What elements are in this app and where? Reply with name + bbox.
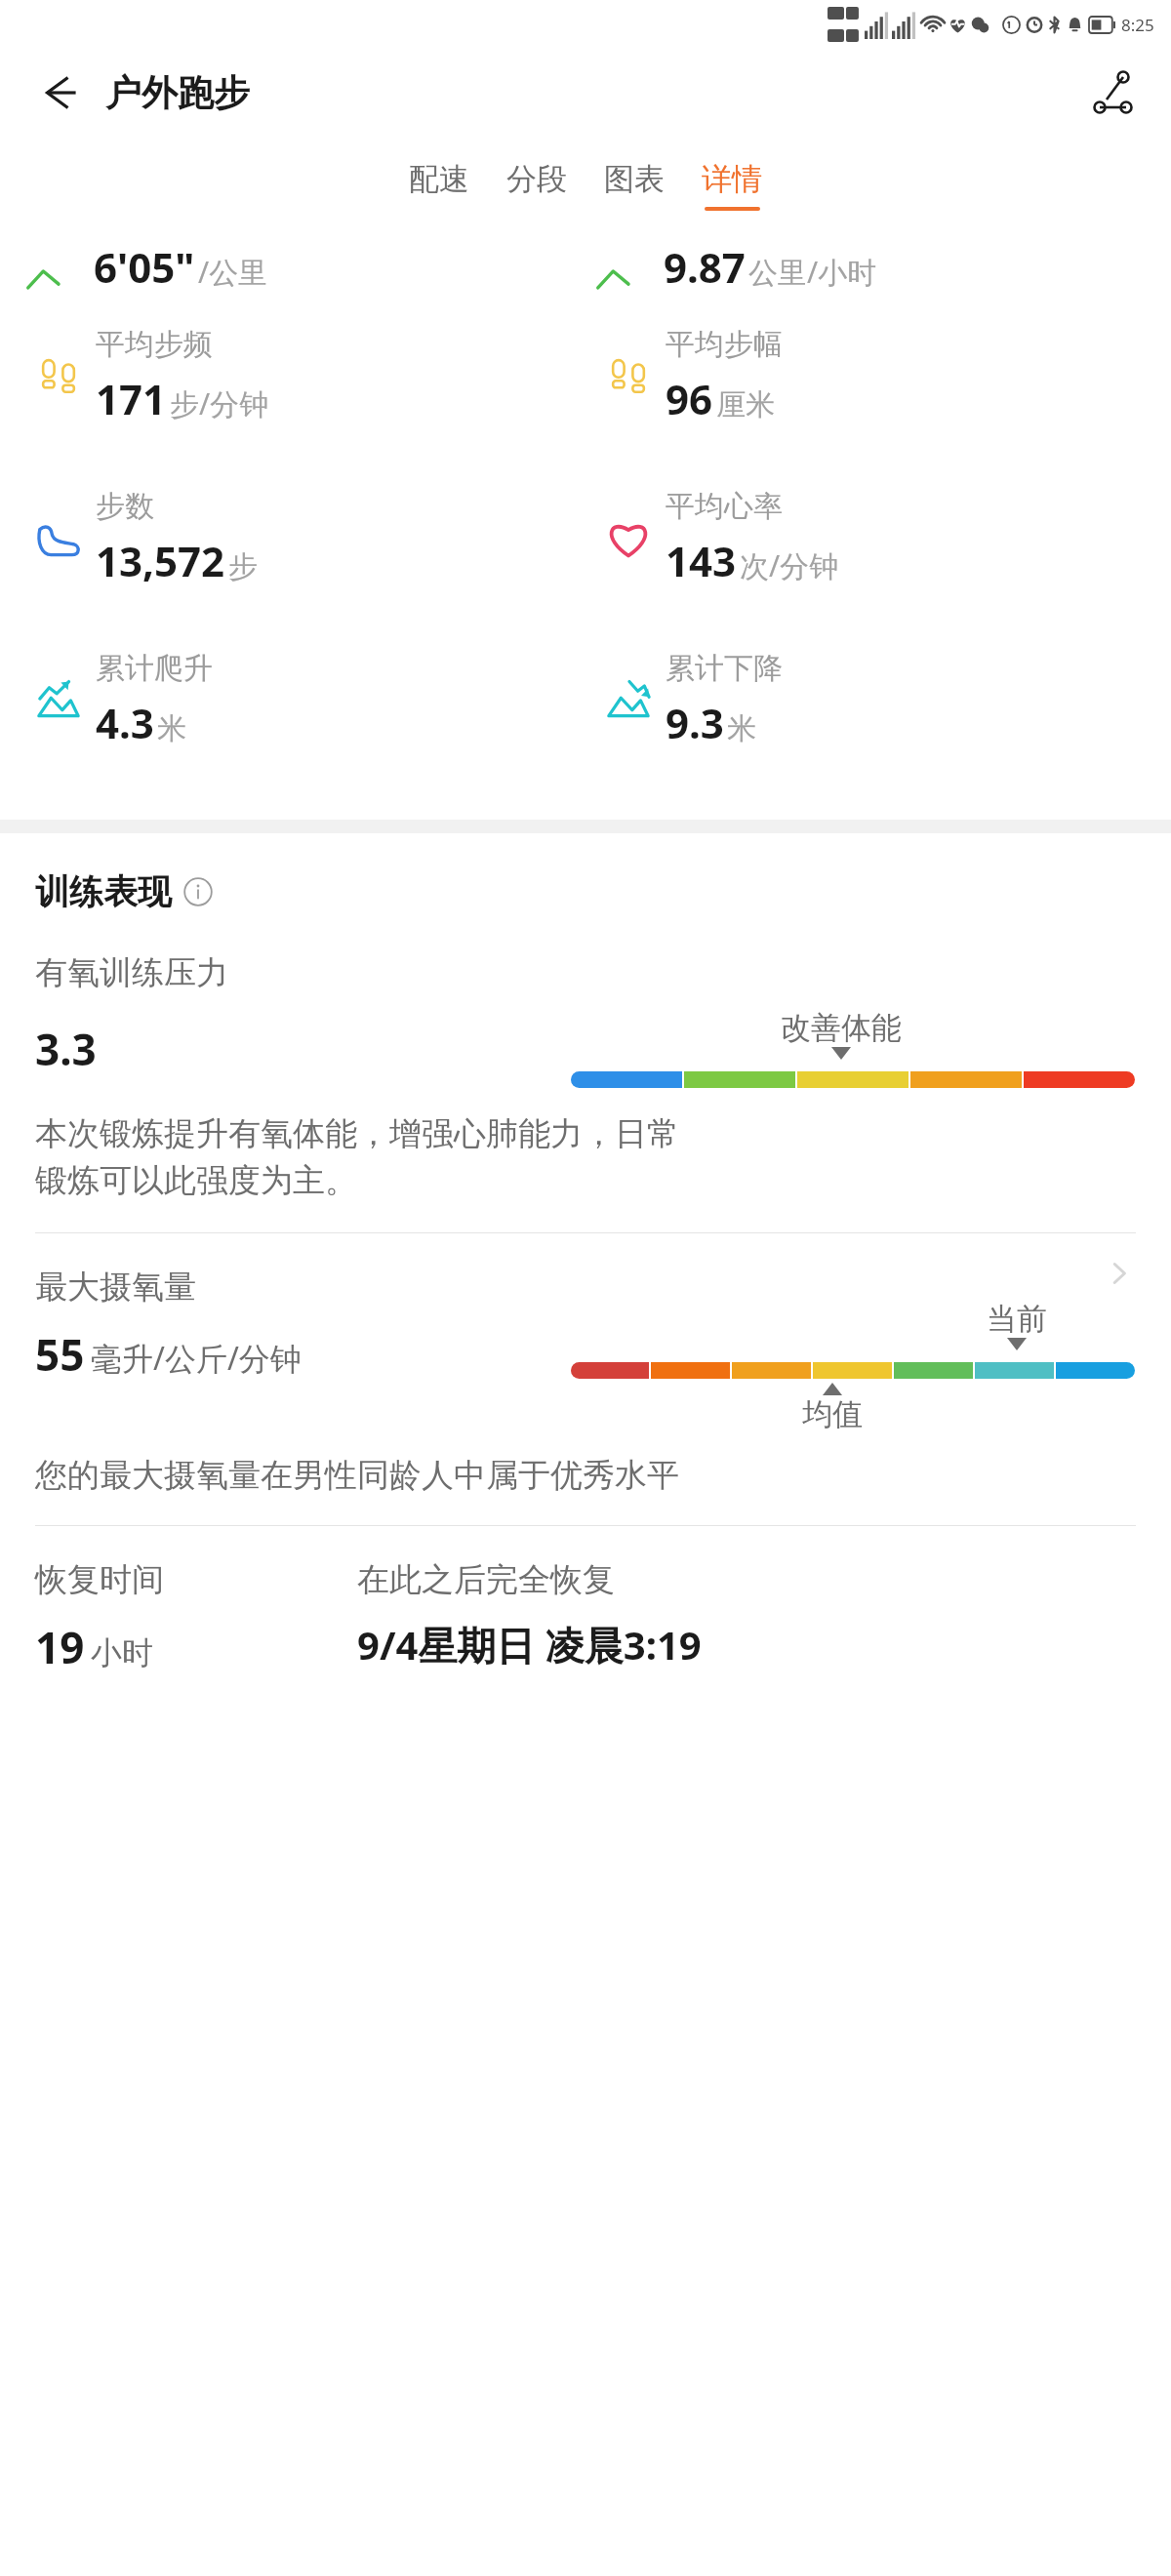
- staticText: /公里: [198, 252, 268, 292]
- button[interactable]: 步数: [21, 457, 585, 619]
- staticText: 步数: [96, 488, 154, 525]
- staticText: 户外跑步: [105, 70, 250, 116]
- staticText: 恢复时间: [35, 1559, 164, 1600]
- staticText: 当前: [987, 1300, 1047, 1338]
- staticText: 次/分钟: [740, 545, 839, 585]
- staticText: 平均心率: [666, 488, 783, 525]
- staticText: 4.3: [96, 695, 154, 750]
- staticText: 在此之后完全恢复: [357, 1559, 615, 1600]
- button[interactable]: Back: [35, 67, 86, 118]
- staticText: 详情: [702, 160, 762, 198]
- staticText: 143: [666, 533, 737, 588]
- staticText: 最大摄氧量: [35, 1267, 196, 1308]
- button[interactable]: 平均步频: [21, 295, 585, 457]
- staticText: 米: [727, 710, 756, 747]
- staticText: 毫升/公斤/分钟: [91, 1337, 302, 1380]
- button[interactable]: 累计下降: [591, 619, 1171, 781]
- staticText: 8:25: [1121, 14, 1154, 36]
- staticText: 96: [666, 371, 713, 426]
- staticText: 9.87: [664, 239, 746, 295]
- staticText: 公里/小时: [748, 252, 877, 292]
- staticText: 13,572: [96, 533, 225, 588]
- button[interactable]: 分段: [506, 160, 567, 211]
- staticText: 您的最大摄氧量在男性同龄人中属于优秀水平: [35, 1455, 679, 1496]
- staticText: 累计下降: [666, 650, 783, 687]
- staticText: 小时: [91, 1633, 153, 1672]
- staticText: 本次锻炼提升有氧体能，增强心肺能力，日常 锻炼可以此强度为主。: [35, 1113, 679, 1201]
- staticText: 19: [35, 1618, 85, 1676]
- button[interactable]: 平均心率: [591, 457, 1171, 619]
- staticText: 平均步频: [96, 326, 213, 363]
- staticText: 171: [96, 371, 167, 426]
- button[interactable]: 最大摄氧量: [35, 1233, 1136, 1443]
- staticText: 米: [157, 710, 186, 747]
- staticText: 3.3: [35, 1020, 97, 1078]
- staticText: 6'05": [94, 239, 195, 295]
- button[interactable]: Share: [1087, 68, 1136, 117]
- staticText: 9.3: [666, 695, 724, 750]
- staticText: 55: [35, 1325, 85, 1384]
- staticText: 平均步幅: [666, 326, 783, 363]
- staticText: 改善体能: [781, 1009, 902, 1047]
- staticText: 累计爬升: [96, 650, 213, 687]
- staticText: 配速: [409, 160, 469, 198]
- button[interactable]: 详情: [702, 160, 762, 211]
- staticText: 均值: [802, 1395, 863, 1433]
- staticText: 图表: [604, 160, 665, 198]
- staticText: 步: [228, 548, 258, 585]
- staticText: 分段: [506, 160, 567, 198]
- staticText: 9/4星期日 凌晨3:19: [357, 1618, 702, 1671]
- staticText: 步/分钟: [170, 383, 269, 423]
- button[interactable]: Info: [183, 877, 213, 906]
- staticText: 厘米: [716, 386, 775, 423]
- staticText: 训练表现: [35, 870, 172, 913]
- staticText: 有氧训练压力: [35, 952, 228, 993]
- button[interactable]: 图表: [604, 160, 665, 211]
- button[interactable]: 累计爬升: [21, 619, 585, 781]
- button[interactable]: 平均步幅: [591, 295, 1171, 457]
- button[interactable]: 配速: [409, 160, 469, 211]
